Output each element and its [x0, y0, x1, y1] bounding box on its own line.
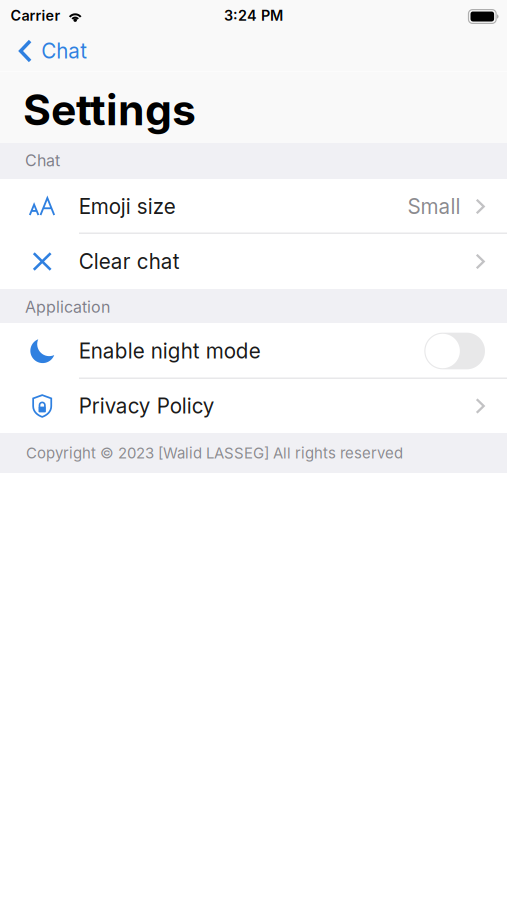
staticText: Enable night mode [79, 338, 261, 363]
button[interactable]: Emoji size [0, 179, 507, 234]
button[interactable]: Enable night mode [0, 323, 507, 379]
button[interactable]: Clear chat [0, 234, 507, 289]
button[interactable]: Chat [0, 29, 87, 72]
staticText: Clear chat [79, 249, 180, 274]
staticText: Emoji size [79, 194, 176, 219]
staticText: Copyright © 2023 [Walid LASSEG] All righ… [26, 444, 403, 462]
staticText: Carrier [10, 7, 60, 24]
staticText: 3:24 PM [224, 7, 283, 24]
staticText: Settings [23, 84, 196, 136]
button[interactable]: Enable night mode [424, 333, 485, 369]
staticText: Chat [41, 38, 87, 63]
staticText: Small [407, 194, 460, 219]
button[interactable]: Privacy Policy [0, 379, 507, 433]
staticText: Privacy Policy [79, 393, 215, 418]
staticText: Application [25, 297, 110, 316]
staticText: Chat [25, 151, 60, 170]
